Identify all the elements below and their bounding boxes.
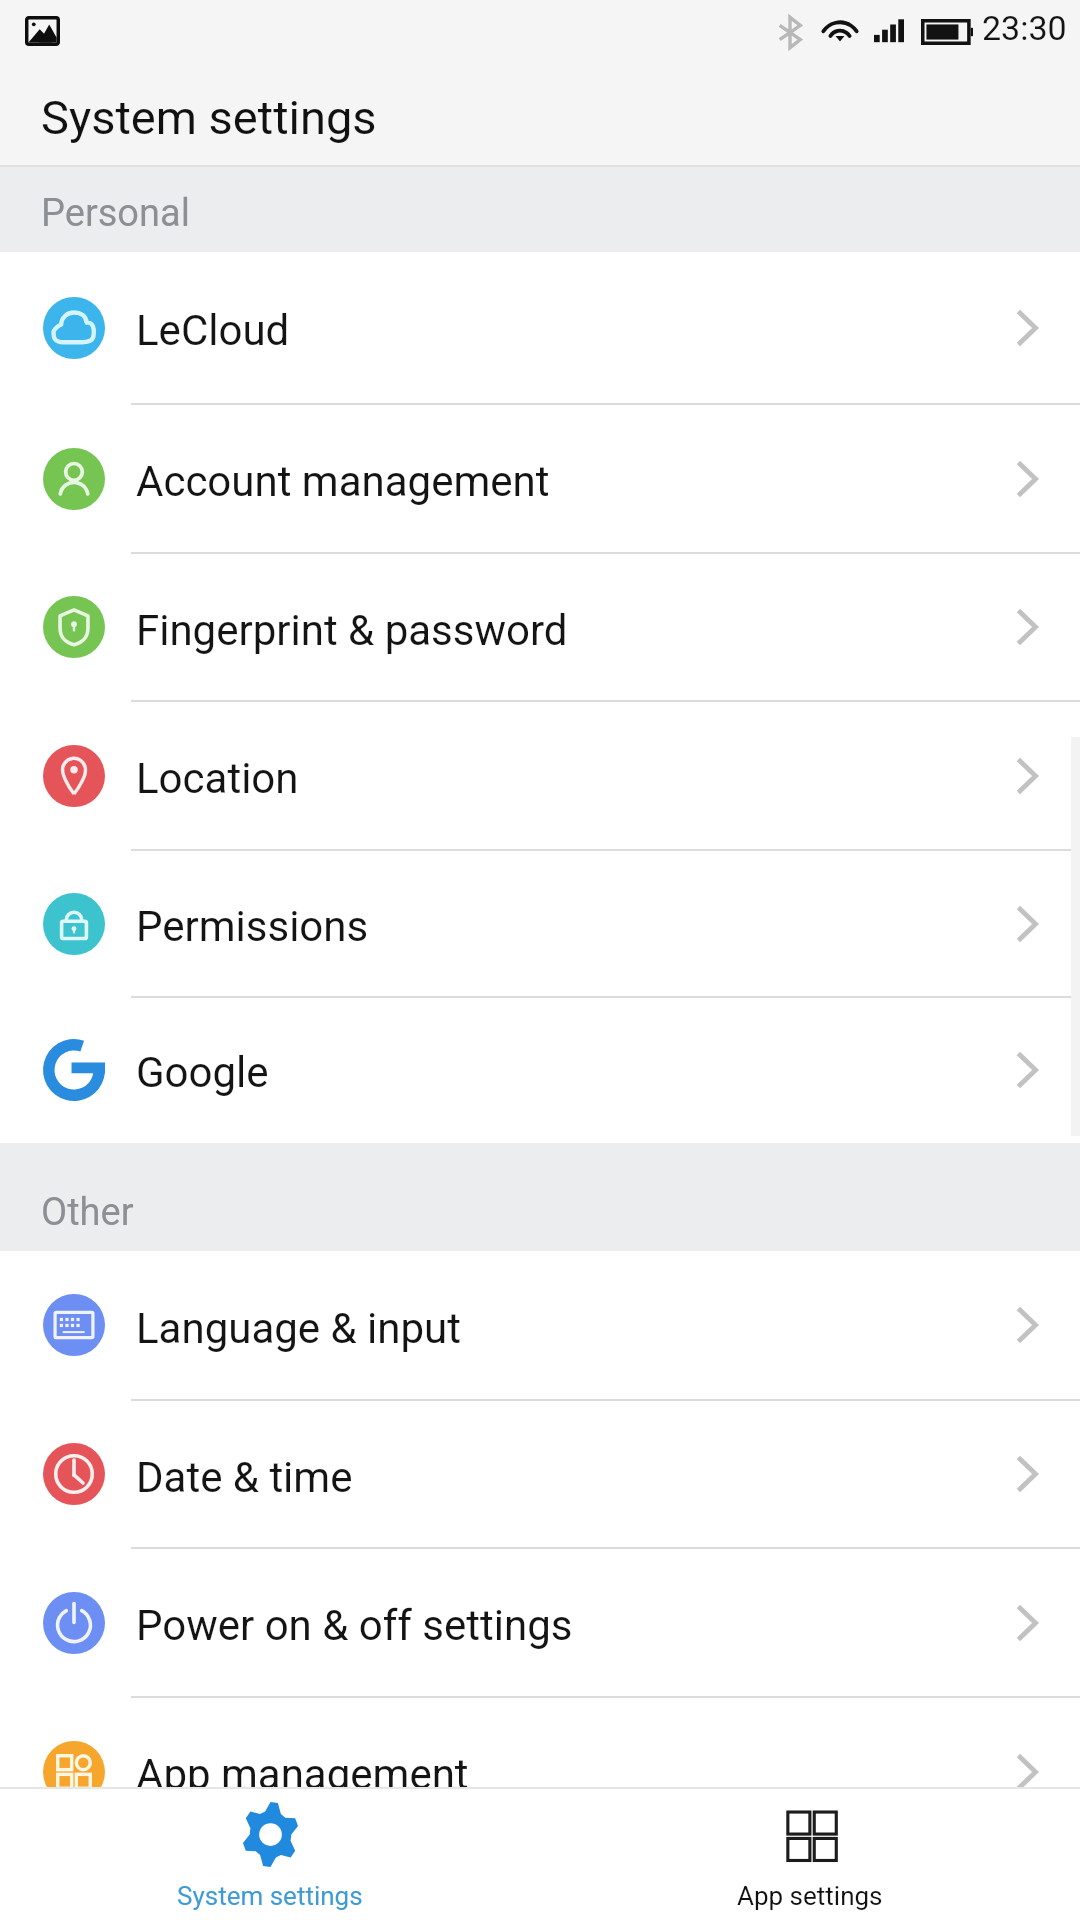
button[interactable]: Google xyxy=(0,998,1080,1143)
button[interactable]: Power on & off settings xyxy=(0,1549,1080,1698)
staticText: Permissions xyxy=(136,902,369,951)
staticText: Power on & off settings xyxy=(136,1601,573,1650)
button[interactable]: LeCloud xyxy=(0,252,1080,405)
staticText: Other xyxy=(41,1190,134,1235)
staticText: LeCloud xyxy=(136,306,290,355)
button[interactable]: App settings xyxy=(540,1787,1080,1920)
staticText: Location xyxy=(136,754,299,803)
staticText: App management xyxy=(136,1750,469,1787)
staticText: 23:30 xyxy=(982,8,1067,48)
staticText: Language & input xyxy=(136,1304,461,1353)
staticText: App settings xyxy=(737,1881,883,1911)
staticText: System settings xyxy=(177,1881,363,1911)
button[interactable]: Account management xyxy=(0,405,1080,554)
button[interactable]: System settings xyxy=(0,1787,540,1920)
button[interactable]: App management xyxy=(0,1698,1080,1787)
button[interactable]: Fingerprint & password xyxy=(0,554,1080,702)
other: App settings xyxy=(782,1802,839,1867)
button[interactable]: Date & time xyxy=(0,1401,1080,1549)
staticText: Account management xyxy=(136,457,550,506)
staticText: Fingerprint & password xyxy=(136,606,568,655)
staticText: System settings xyxy=(41,90,377,145)
button[interactable]: Location xyxy=(0,702,1080,851)
other: System settings xyxy=(242,1802,299,1867)
staticText: Personal xyxy=(41,191,190,236)
button[interactable]: Permissions xyxy=(0,851,1080,998)
staticText: Google xyxy=(136,1048,269,1097)
button[interactable]: Language & input xyxy=(0,1251,1080,1401)
staticText: Date & time xyxy=(136,1453,353,1502)
